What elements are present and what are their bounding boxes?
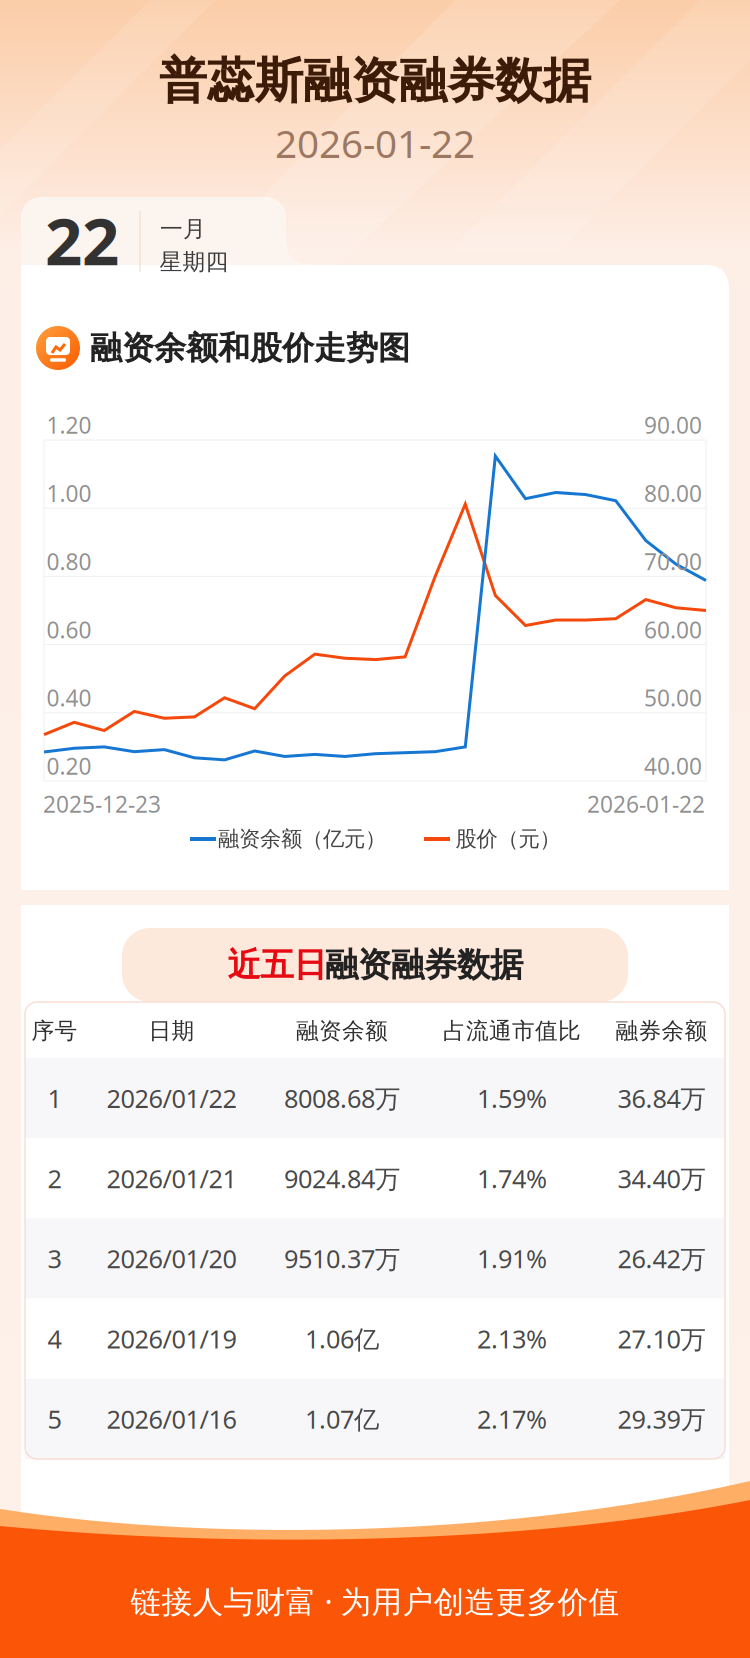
staticText: 60.00 (644, 614, 702, 645)
staticText: 40.00 (644, 751, 702, 781)
staticText: 2026/01/20 (106, 1242, 236, 1275)
staticText: 0.60 (46, 614, 91, 645)
staticText: 融资余额和股价走势图 (90, 328, 410, 368)
staticText: 34.40万 (617, 1161, 705, 1195)
staticText: 2026/01/22 (106, 1081, 236, 1115)
staticText: 9024.84万 (284, 1161, 400, 1195)
staticText: 2026/01/21 (106, 1161, 236, 1195)
staticText: 8008.68万 (284, 1081, 400, 1115)
staticText: 4 (47, 1322, 61, 1355)
staticText: 星期四 (159, 248, 228, 276)
staticText: 29.39万 (617, 1402, 705, 1436)
staticText: 9510.37万 (284, 1242, 400, 1275)
staticText: 1.06亿 (305, 1322, 379, 1355)
staticText: 普蕊斯融资融券数据 (159, 51, 591, 110)
staticText: 近五日 (227, 944, 326, 985)
staticText: 2025-12-23 (43, 789, 161, 819)
staticText: 2026-01-22 (275, 117, 475, 169)
staticText: 融资余额 (296, 1017, 388, 1045)
staticText: 占流通市值比 (443, 1017, 581, 1045)
staticText: 5 (47, 1402, 61, 1436)
staticText: 1.91% (477, 1242, 547, 1275)
staticText: 序号 (31, 1017, 77, 1045)
staticText: 股价（元） (455, 826, 560, 852)
staticText: 融资余额（亿元） (218, 826, 386, 852)
staticText: 2.13% (477, 1322, 547, 1355)
staticText: 2.17% (477, 1402, 547, 1436)
staticText: 1.59% (477, 1081, 547, 1115)
staticText: 链接人与财富 · 为用户创造更多价值 (130, 1581, 619, 1621)
staticText: 90.00 (644, 410, 702, 440)
staticText: 22 (45, 197, 119, 283)
staticText: 0.80 (46, 546, 91, 576)
staticText: 2026/01/16 (106, 1402, 236, 1436)
staticText: 70.00 (644, 546, 702, 576)
staticText: 26.42万 (617, 1242, 705, 1275)
staticText: 1 (47, 1081, 61, 1115)
staticText: 80.00 (644, 478, 702, 508)
staticText: 融资融券数据 (325, 944, 523, 985)
staticText: 2026/01/19 (106, 1322, 236, 1355)
staticText: 1.20 (46, 410, 91, 440)
staticText: 日期 (148, 1017, 194, 1045)
staticText: 0.40 (46, 683, 91, 713)
staticText: 1.00 (46, 478, 91, 508)
staticText: 50.00 (644, 683, 702, 713)
staticText: 一月 (160, 215, 206, 243)
staticText: 36.84万 (617, 1081, 705, 1115)
staticText: 2026-01-22 (587, 789, 705, 819)
staticText: 3 (47, 1242, 61, 1275)
staticText: 1.07亿 (305, 1402, 379, 1436)
staticText: 1.74% (477, 1161, 547, 1195)
staticText: 2 (47, 1161, 61, 1195)
staticText: 融券余额 (615, 1017, 707, 1045)
staticText: 0.20 (46, 751, 91, 781)
staticText: 27.10万 (617, 1322, 705, 1355)
